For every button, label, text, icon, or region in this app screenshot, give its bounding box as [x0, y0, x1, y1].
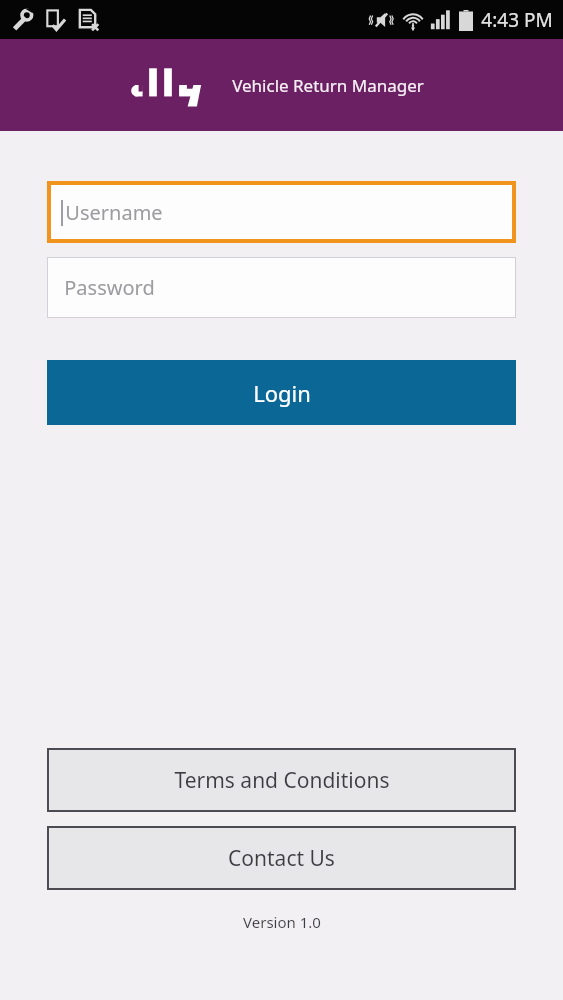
staticText: Vehicle Return Manager: [232, 74, 424, 97]
staticText: Username: [65, 199, 163, 226]
button[interactable]: Contact Us: [47, 826, 516, 890]
button[interactable]: Password: [47, 257, 516, 318]
staticText: Login: [253, 378, 311, 408]
staticText: Password: [64, 274, 155, 301]
staticText: 4:43 PM: [481, 7, 553, 33]
button[interactable]: Username: [47, 181, 516, 243]
staticText: Version 1.0: [243, 912, 321, 932]
staticText: Contact Us: [228, 844, 335, 873]
button[interactable]: Login: [47, 360, 516, 425]
button[interactable]: Terms and Conditions: [47, 748, 516, 812]
staticText: Terms and Conditions: [174, 766, 390, 795]
